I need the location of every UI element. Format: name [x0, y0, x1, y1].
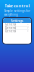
- staticText: Simple settings for everything: [4, 9, 30, 16]
- staticText: General: [5, 23, 16, 26]
- staticText: Settings: [10, 18, 23, 23]
- staticText: >: [27, 29, 29, 33]
- staticText: General: [5, 29, 16, 33]
- staticText: Take control: [4, 3, 29, 8]
- staticText: General: [5, 26, 16, 30]
- staticText: >: [27, 23, 29, 26]
- staticText: >: [27, 26, 29, 30]
